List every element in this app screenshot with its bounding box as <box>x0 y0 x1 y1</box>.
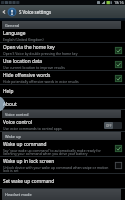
button[interactable]: Hide offensive words <box>0 71 125 85</box>
staticText: Wake up command <box>3 141 47 148</box>
staticText: Headset mode <box>5 192 32 197</box>
staticText: 18:16 <box>114 0 124 5</box>
button[interactable]: Wake up command <box>0 140 125 157</box>
staticText: Unlock device with your wake up command … <box>3 165 112 173</box>
staticText: Use current location to improve results <box>3 65 65 70</box>
staticText: S Voice settings <box>19 9 52 15</box>
staticText: Voice control <box>3 119 33 126</box>
staticText: Say 'your wake up command' to automatica… <box>3 148 112 156</box>
staticText: About <box>3 101 17 108</box>
staticText: OFF <box>106 124 112 128</box>
button[interactable]: Help <box>0 85 125 98</box>
button[interactable]: Voice control <box>0 118 125 132</box>
button[interactable]: Use location data <box>0 57 125 71</box>
button[interactable]: Wake up in lock screen <box>0 157 125 174</box>
staticText: English (United Kingdom) <box>3 37 44 42</box>
button[interactable]: Open via the home key <box>0 43 125 57</box>
button[interactable]: Toggle voice control <box>104 122 122 129</box>
button[interactable]: Language <box>0 29 125 43</box>
staticText: Help <box>3 88 14 95</box>
staticText: Use voice commands to control apps <box>3 126 62 131</box>
button[interactable]: About <box>0 98 125 110</box>
staticText: Voice control <box>5 112 29 117</box>
staticText: Wake up <box>5 134 21 139</box>
staticText: Open S Voice by double pressing the home… <box>3 51 78 56</box>
button[interactable]: Navigate up <box>0 5 7 18</box>
button[interactable]: Set wake up command <box>0 174 125 189</box>
staticText: Hide offensive words <box>3 72 51 79</box>
staticText: Use location data <box>3 58 43 65</box>
staticText: Hide potentially offensive words in voic… <box>3 79 79 84</box>
staticText: Set wake up command <box>3 178 55 185</box>
staticText: Open via the home key <box>3 44 55 51</box>
staticText: General <box>5 23 20 28</box>
staticText: Language <box>3 30 26 37</box>
staticText: Wake up in lock screen <box>3 158 55 165</box>
